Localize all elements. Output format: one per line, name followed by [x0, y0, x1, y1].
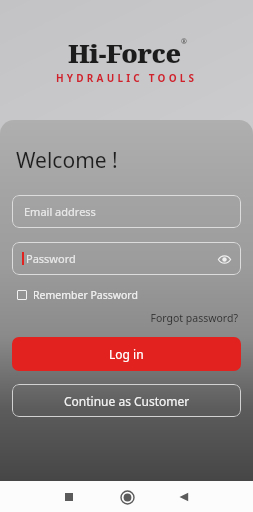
staticText: Continue as Customer — [64, 393, 190, 409]
staticText: Remember Password — [33, 288, 138, 302]
staticText: Welcome ! — [16, 146, 118, 175]
button[interactable]: Continue as Customer — [12, 384, 241, 417]
staticText: Password — [26, 251, 76, 266]
button[interactable]: Recent apps — [56, 484, 82, 510]
button[interactable]: Remember Password — [12, 286, 142, 304]
staticText: HYDRAULIC TOOLS — [56, 71, 198, 85]
staticText: Log in — [109, 346, 144, 362]
staticText: ® — [181, 37, 187, 47]
button[interactable]: Email address — [12, 195, 241, 228]
button[interactable]: Back — [171, 484, 197, 510]
button[interactable]: Log in — [12, 337, 241, 371]
staticText: Email address — [24, 204, 96, 219]
button[interactable]: Forgot password? — [147, 309, 241, 327]
button[interactable]: Password — [12, 242, 241, 275]
button[interactable]: Show password — [211, 246, 237, 272]
button[interactable]: Home — [114, 484, 140, 510]
staticText: Hi-Force — [68, 35, 181, 70]
